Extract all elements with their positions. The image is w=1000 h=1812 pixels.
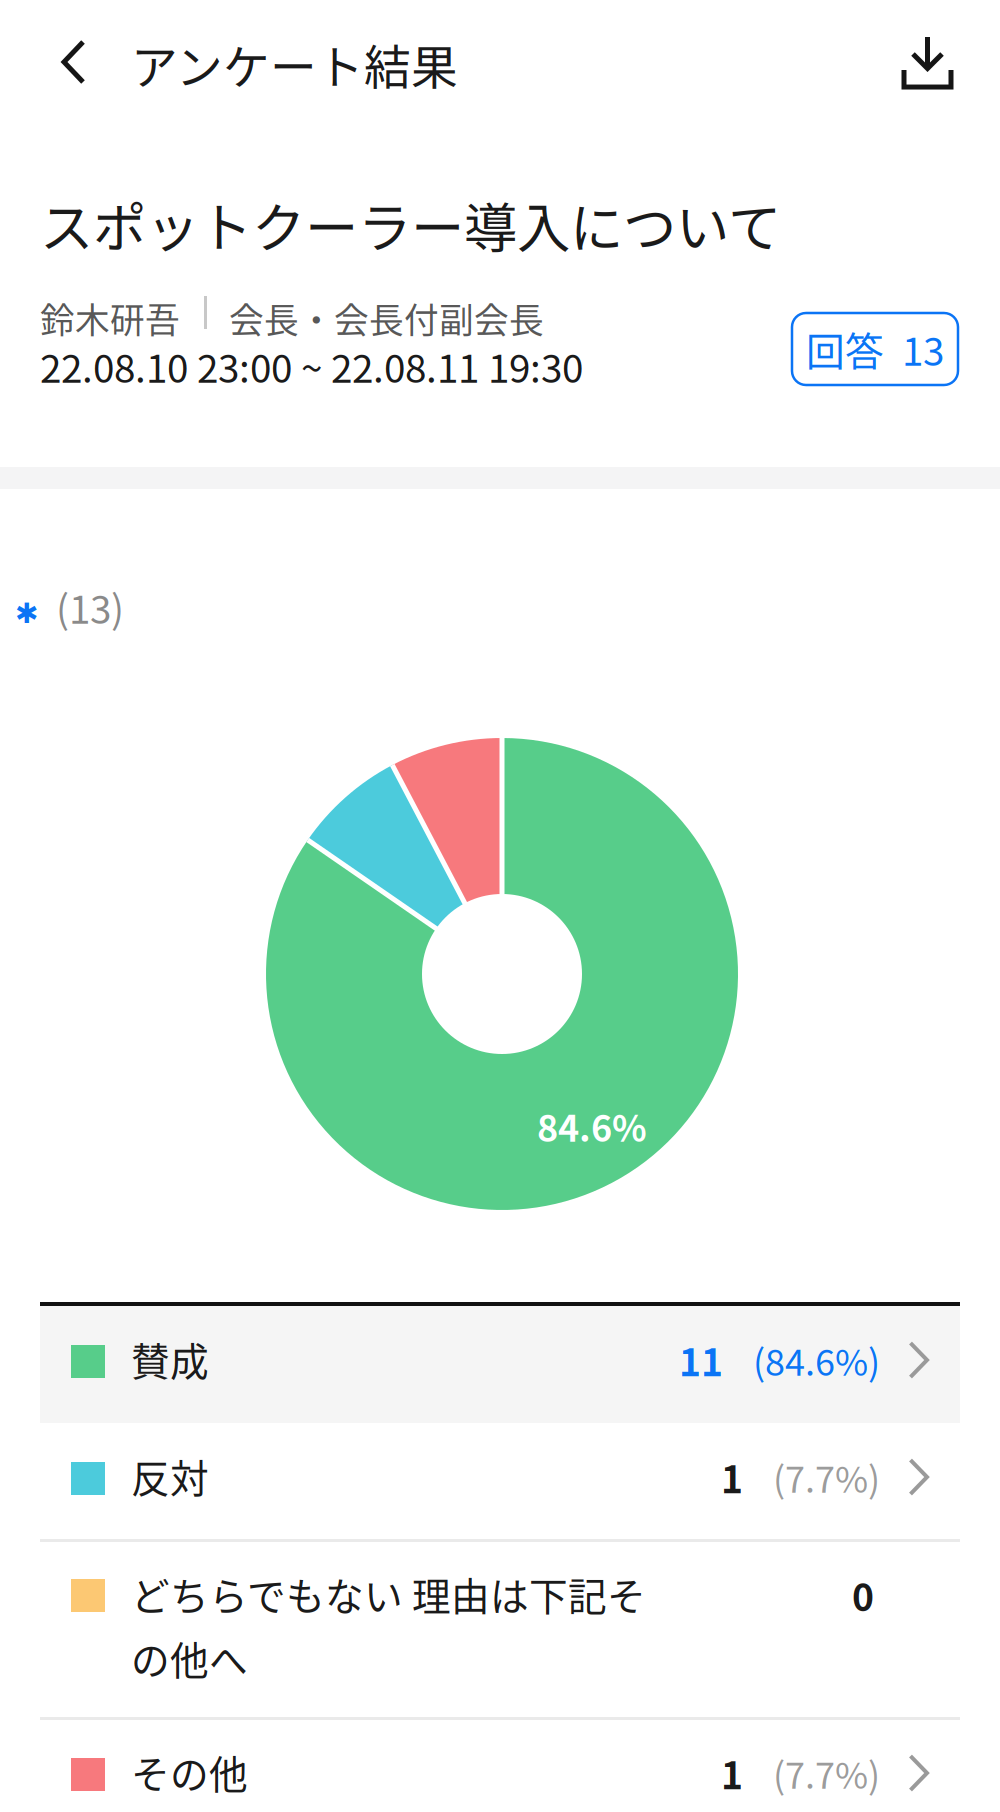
button[interactable]: 賛成: [40, 1306, 960, 1423]
staticText: ✱: [15, 597, 38, 630]
staticText: 22.08.10 23:00 ~ 22.08.11 19:30: [40, 338, 583, 394]
staticText: 会長・会長付副会長: [229, 293, 544, 343]
staticText: アンケート結果: [131, 30, 458, 98]
staticText: 1: [721, 1746, 743, 1800]
staticText: (84.6%): [753, 1334, 880, 1386]
button[interactable]: 反対: [40, 1423, 960, 1539]
staticText: 0: [852, 1568, 874, 1622]
staticText: 反対: [131, 1448, 209, 1504]
staticText: (7.7%): [773, 1451, 880, 1503]
button[interactable]: Download: [888, 22, 967, 102]
staticText: 鈴木研吾: [40, 293, 180, 343]
staticText: (7.7%): [773, 1747, 880, 1799]
staticText: 11: [679, 1333, 723, 1387]
staticText: 84.6%: [537, 1100, 647, 1152]
button[interactable]: その他: [40, 1720, 960, 1812]
staticText: その他: [131, 1744, 248, 1800]
staticText: 回答 13: [806, 321, 944, 377]
staticText: スポットクーラー導入について: [40, 186, 781, 263]
staticText: どちらでもない 理由は下記そ: [131, 1566, 646, 1622]
staticText: の他へ: [131, 1630, 248, 1686]
button[interactable]: 回答 13: [792, 313, 958, 385]
staticText: 1: [721, 1450, 743, 1504]
staticText: (13): [56, 579, 124, 635]
button[interactable]: Back: [51, 29, 96, 95]
button[interactable]: どちらでもない 理由は下記そ: [40, 1542, 960, 1717]
staticText: 賛成: [131, 1331, 209, 1387]
